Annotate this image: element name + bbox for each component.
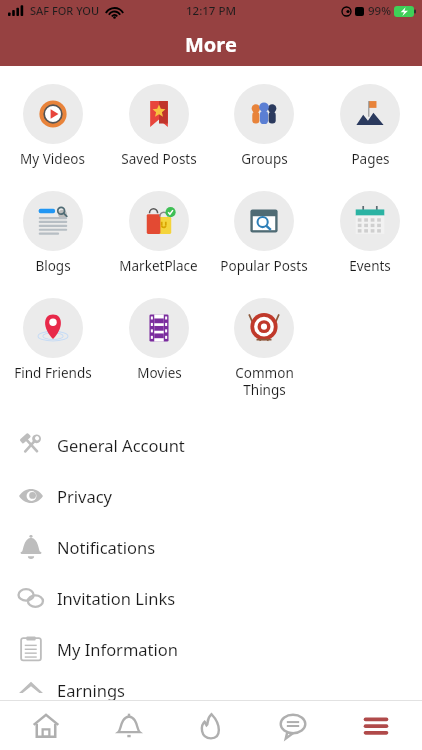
button[interactable]: Earnings	[0, 674, 422, 706]
staticText: Groups	[241, 150, 288, 168]
staticText: Privacy	[57, 485, 113, 507]
staticText: MarketPlace	[119, 257, 198, 275]
staticText: 99%	[368, 3, 391, 19]
staticText: General Account	[57, 434, 185, 456]
button[interactable]: My Videos	[20, 82, 85, 170]
staticText: Earnings	[57, 679, 125, 701]
button[interactable]: Blogs	[23, 189, 83, 277]
button[interactable]: Messages	[257, 701, 329, 750]
button[interactable]: Pages	[340, 82, 400, 170]
button[interactable]: Trending	[175, 701, 247, 750]
button[interactable]: Find Friends	[14, 296, 92, 384]
button[interactable]: Home	[10, 701, 82, 750]
staticText: Find Friends	[14, 364, 92, 382]
button[interactable]: Popular Posts	[220, 189, 308, 277]
staticText: Saved Posts	[121, 150, 197, 168]
button[interactable]: Notifications	[0, 521, 422, 572]
button[interactable]: My Information	[0, 623, 422, 674]
button[interactable]: Menu	[340, 701, 412, 750]
button[interactable]: Invitation Links	[0, 572, 422, 623]
button[interactable]: Events	[340, 189, 400, 277]
button[interactable]: General Account	[0, 419, 422, 470]
staticText: Invitation Links	[57, 587, 176, 609]
staticText: My Information	[57, 638, 179, 660]
staticText: Movies	[137, 364, 182, 382]
staticText: More	[185, 31, 237, 58]
staticText: SAF FOR YOU	[30, 3, 100, 18]
staticText: Popular Posts	[220, 257, 308, 275]
staticText: Blogs	[35, 257, 71, 275]
staticText: Notifications	[57, 536, 156, 558]
button[interactable]: Saved Posts	[121, 82, 197, 170]
staticText: Pages	[351, 150, 390, 168]
staticText: 12:17 PM	[186, 3, 237, 19]
staticText: Common Things	[235, 364, 294, 399]
staticText: Events	[349, 257, 391, 275]
button[interactable]: Movies	[129, 296, 189, 384]
button[interactable]: Groups	[234, 82, 294, 170]
button[interactable]: Notifications	[93, 701, 165, 750]
button[interactable]: MarketPlace	[119, 189, 198, 277]
staticText: My Videos	[20, 150, 85, 168]
button[interactable]: Common Things	[234, 296, 294, 401]
button[interactable]: Privacy	[0, 470, 422, 521]
